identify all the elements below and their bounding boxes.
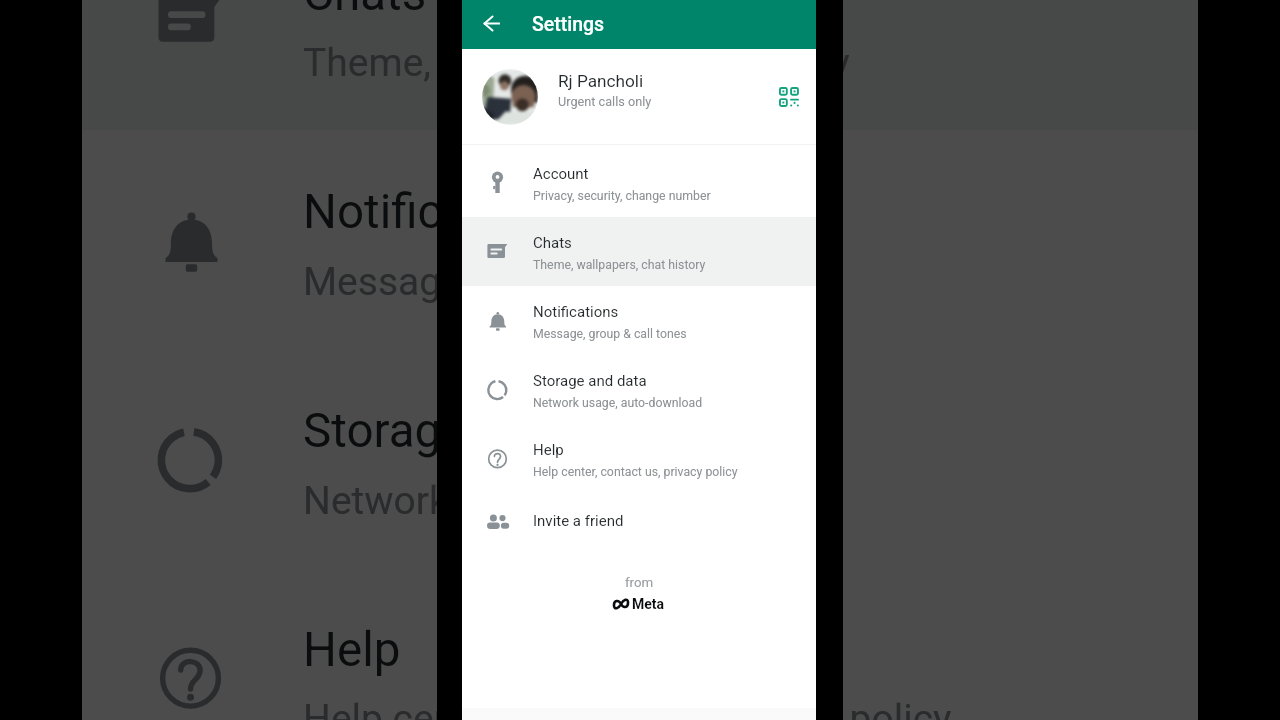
button[interactable]: Help [462, 424, 816, 493]
button[interactable]: Invite a friend [462, 493, 816, 562]
staticText: Help center, contact us, privacy policy [533, 465, 738, 479]
staticText: Message, group & call tones [533, 327, 687, 341]
staticText: Message, group & call tones [303, 260, 791, 304]
staticText: Theme, wallpapers, chat history [303, 41, 851, 86]
staticText: Account [533, 165, 589, 183]
staticText: from [625, 575, 654, 591]
staticText: Help center, contact us, privacy policy [303, 698, 953, 720]
button[interactable]: Chats [462, 217, 816, 286]
button[interactable]: Scan QR code [779, 87, 799, 107]
staticText: Meta [632, 596, 665, 612]
button[interactable]: Account [462, 148, 816, 217]
staticText: Notifications [533, 303, 619, 321]
staticText: Storage and data [303, 403, 664, 460]
staticText: Chats [303, 0, 427, 22]
staticText: Network usage, auto-download [303, 479, 842, 523]
staticText: Invite a friend [533, 512, 624, 530]
button[interactable]: Back [483, 16, 500, 31]
button[interactable]: Rj Pancholi [462, 49, 816, 144]
staticText: Chats [533, 234, 572, 252]
staticText: Network usage, auto-download [533, 396, 703, 410]
staticText: Help [533, 441, 564, 459]
staticText: Help [303, 621, 401, 679]
button[interactable]: Notifications [462, 286, 816, 355]
staticText: Notifications [303, 184, 576, 241]
staticText: Rj Pancholi [558, 71, 644, 91]
staticText: Settings [532, 13, 605, 36]
staticText: Theme, wallpapers, chat history [533, 258, 706, 272]
button[interactable]: Storage and data [462, 355, 816, 424]
staticText: Privacy, security, change number [533, 189, 711, 203]
staticText: Storage and data [533, 372, 647, 390]
staticText: Urgent calls only [558, 94, 652, 109]
